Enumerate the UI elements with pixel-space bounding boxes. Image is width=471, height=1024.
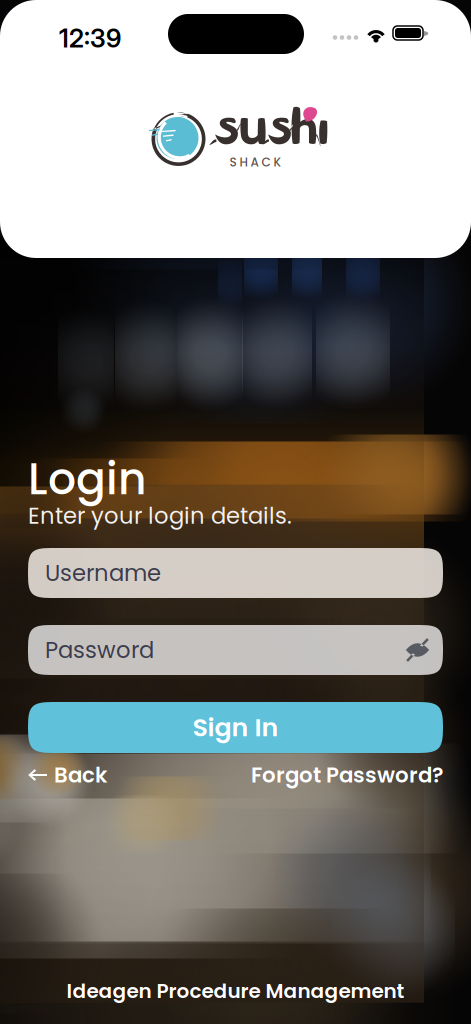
- staticText: Enter your login details.: [28, 500, 292, 532]
- staticText: S H A C K: [229, 154, 281, 171]
- staticText: Ideagen Procedure Management: [66, 977, 404, 1005]
- button[interactable]: Forgot Password?: [213, 762, 443, 788]
- button[interactable]: Back: [28, 762, 107, 788]
- staticText: Password: [45, 634, 154, 666]
- staticText: Sign In: [192, 710, 278, 745]
- staticText: Username: [45, 557, 161, 589]
- staticText: Forgot Password?: [251, 760, 443, 790]
- staticText: Login: [28, 448, 147, 510]
- button[interactable]: Sign In: [28, 702, 443, 753]
- button[interactable]: Show password: [405, 639, 430, 660]
- staticText: 12:39: [59, 23, 121, 54]
- staticText: Back: [54, 760, 107, 790]
